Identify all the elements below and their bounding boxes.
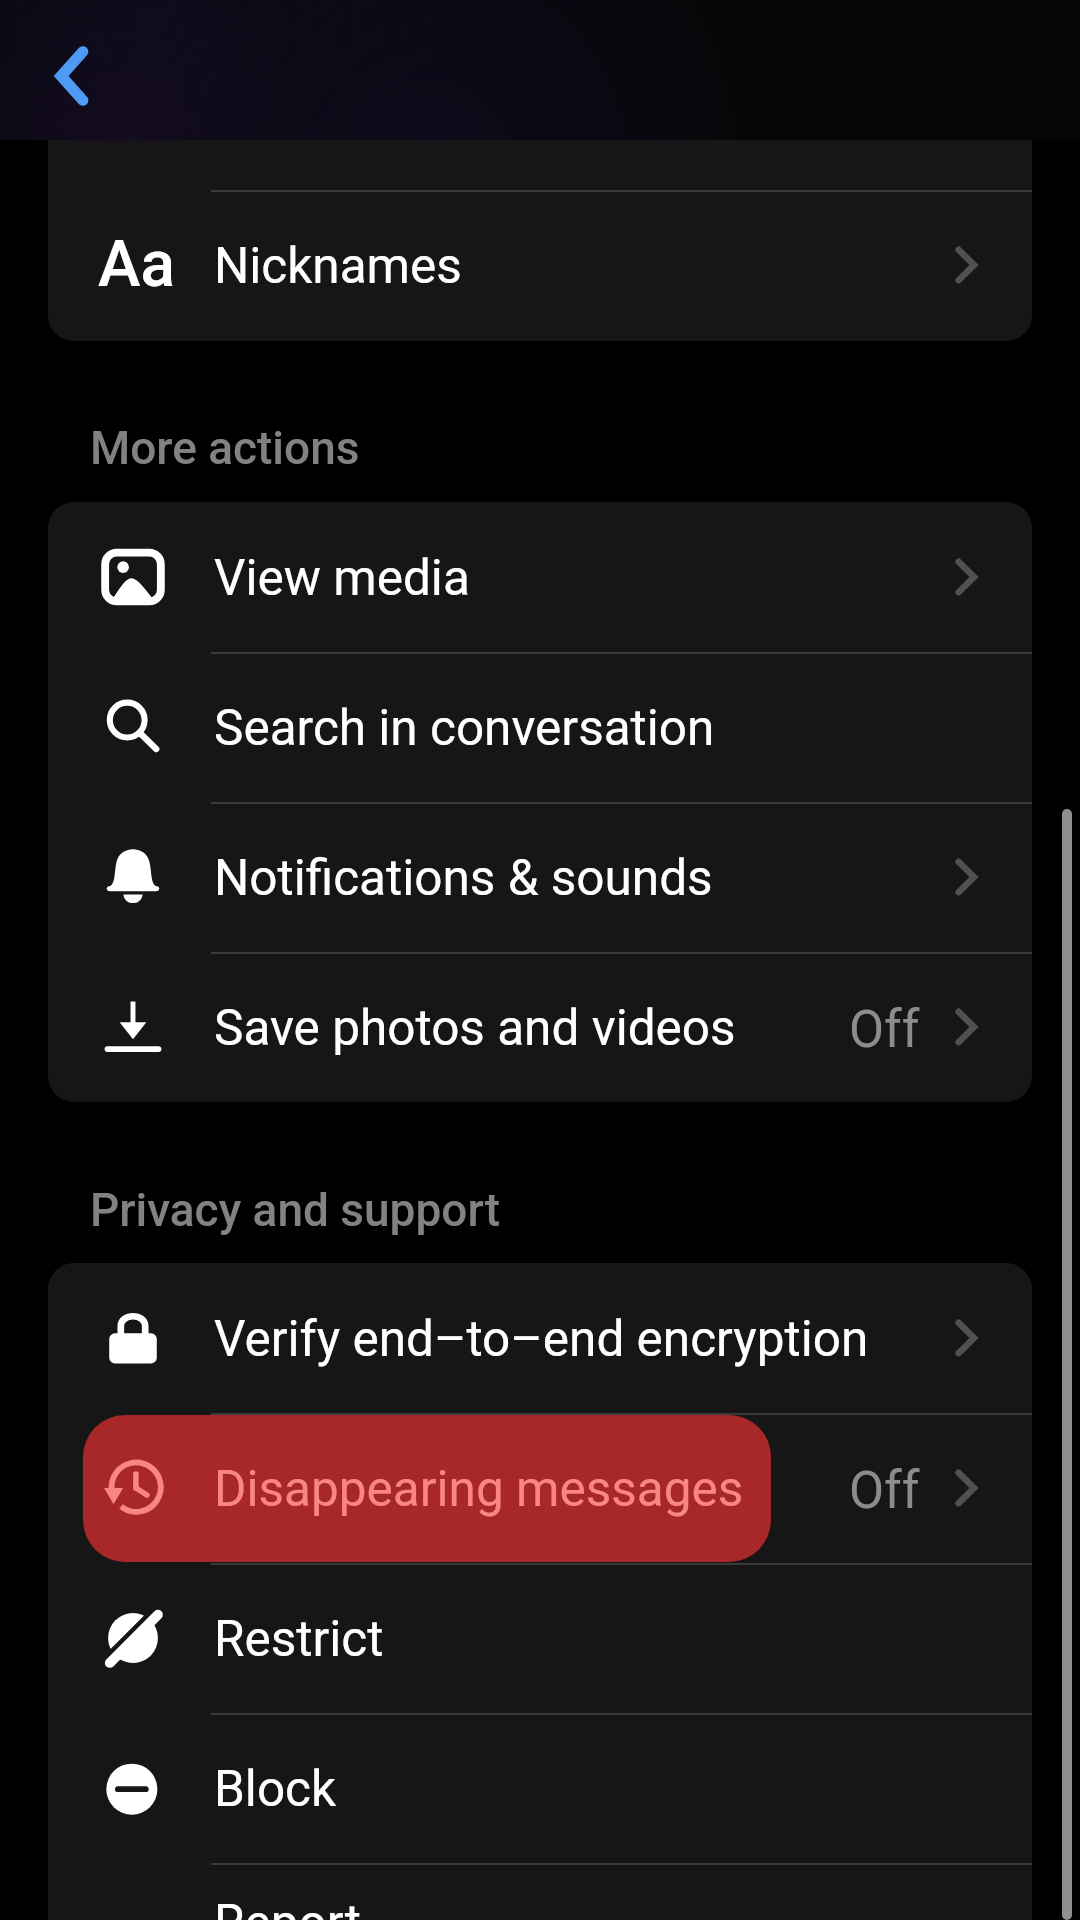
staticText: Restrict xyxy=(214,1610,384,1668)
staticText: View media xyxy=(214,549,470,607)
staticText: Block xyxy=(214,1760,337,1818)
staticText: Search in conversation xyxy=(214,699,715,757)
button[interactable]: View media xyxy=(48,502,1032,652)
staticText: Report xyxy=(214,1894,361,1920)
staticText: Nicknames xyxy=(214,237,462,295)
button[interactable]: Search in conversation xyxy=(48,652,1032,802)
staticText: Save photos and videos xyxy=(214,999,736,1057)
staticText: Notifications & sounds xyxy=(214,849,713,907)
button[interactable]: Save photos and videos xyxy=(48,952,1032,1102)
button[interactable]: Restrict xyxy=(48,1563,1032,1713)
button[interactable]: Verify end–to–end encryption xyxy=(48,1263,1032,1413)
staticText: More actions xyxy=(90,421,360,475)
staticText: Privacy and support xyxy=(90,1183,501,1237)
staticText: Off xyxy=(849,1461,920,1521)
button[interactable]: Aa xyxy=(48,190,1032,340)
staticText: Disappearing messages xyxy=(214,1460,744,1518)
button[interactable]: Notifications & sounds xyxy=(48,802,1032,952)
staticText: Off xyxy=(849,1000,920,1060)
staticText: Aa xyxy=(98,227,175,302)
staticText: Verify end–to–end encryption xyxy=(214,1310,869,1368)
button[interactable]: Back xyxy=(27,31,117,121)
button[interactable]: Block xyxy=(48,1713,1032,1863)
button[interactable]: Report xyxy=(48,1863,1032,1920)
button[interactable]: Disappearing messages xyxy=(48,1413,1032,1563)
